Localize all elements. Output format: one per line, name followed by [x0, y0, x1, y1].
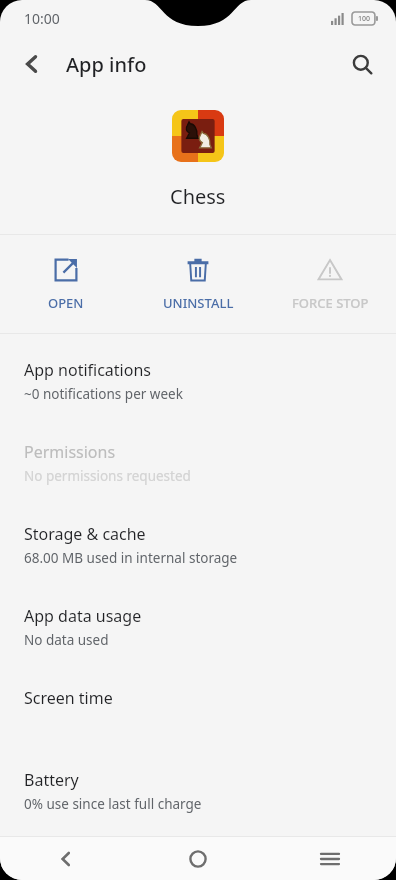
- staticText: UNINSTALL: [163, 294, 234, 312]
- staticText: App notifications: [24, 359, 151, 381]
- staticText: Battery: [24, 769, 79, 791]
- staticText: Chess: [170, 183, 226, 210]
- staticText: App info: [66, 51, 147, 78]
- staticText: Storage & cache: [24, 523, 146, 545]
- button[interactable]: Permissions: [0, 426, 396, 508]
- staticText: FORCE STOP: [292, 294, 369, 312]
- staticText: OPEN: [48, 294, 84, 312]
- button[interactable]: Screen time: [0, 672, 396, 754]
- staticText: Screen time: [24, 687, 113, 709]
- staticText: No data used: [24, 631, 109, 649]
- button[interactable]: App data usage: [0, 590, 396, 672]
- button[interactable]: Back: [0, 837, 132, 880]
- button[interactable]: Storage & cache: [0, 508, 396, 590]
- staticText: 68.00 MB used in internal storage: [24, 549, 238, 567]
- staticText: App data usage: [24, 605, 142, 627]
- button[interactable]: Search: [340, 42, 384, 86]
- button[interactable]: App notifications: [0, 344, 396, 426]
- staticText: 0% use since last full charge: [24, 795, 202, 813]
- button[interactable]: Battery: [0, 754, 396, 836]
- staticText: 10:00: [24, 9, 60, 28]
- staticText: 100: [358, 14, 371, 24]
- button[interactable]: Back: [8, 40, 56, 88]
- staticText: ~0 notifications per week: [24, 385, 183, 403]
- button[interactable]: UNINSTALL: [132, 235, 264, 333]
- button[interactable]: Home: [132, 837, 264, 880]
- staticText: Permissions: [24, 441, 116, 463]
- button[interactable]: FORCE STOP: [264, 235, 396, 333]
- button[interactable]: Recent apps: [264, 837, 396, 880]
- button[interactable]: OPEN: [0, 235, 132, 333]
- staticText: No permissions requested: [24, 467, 191, 485]
